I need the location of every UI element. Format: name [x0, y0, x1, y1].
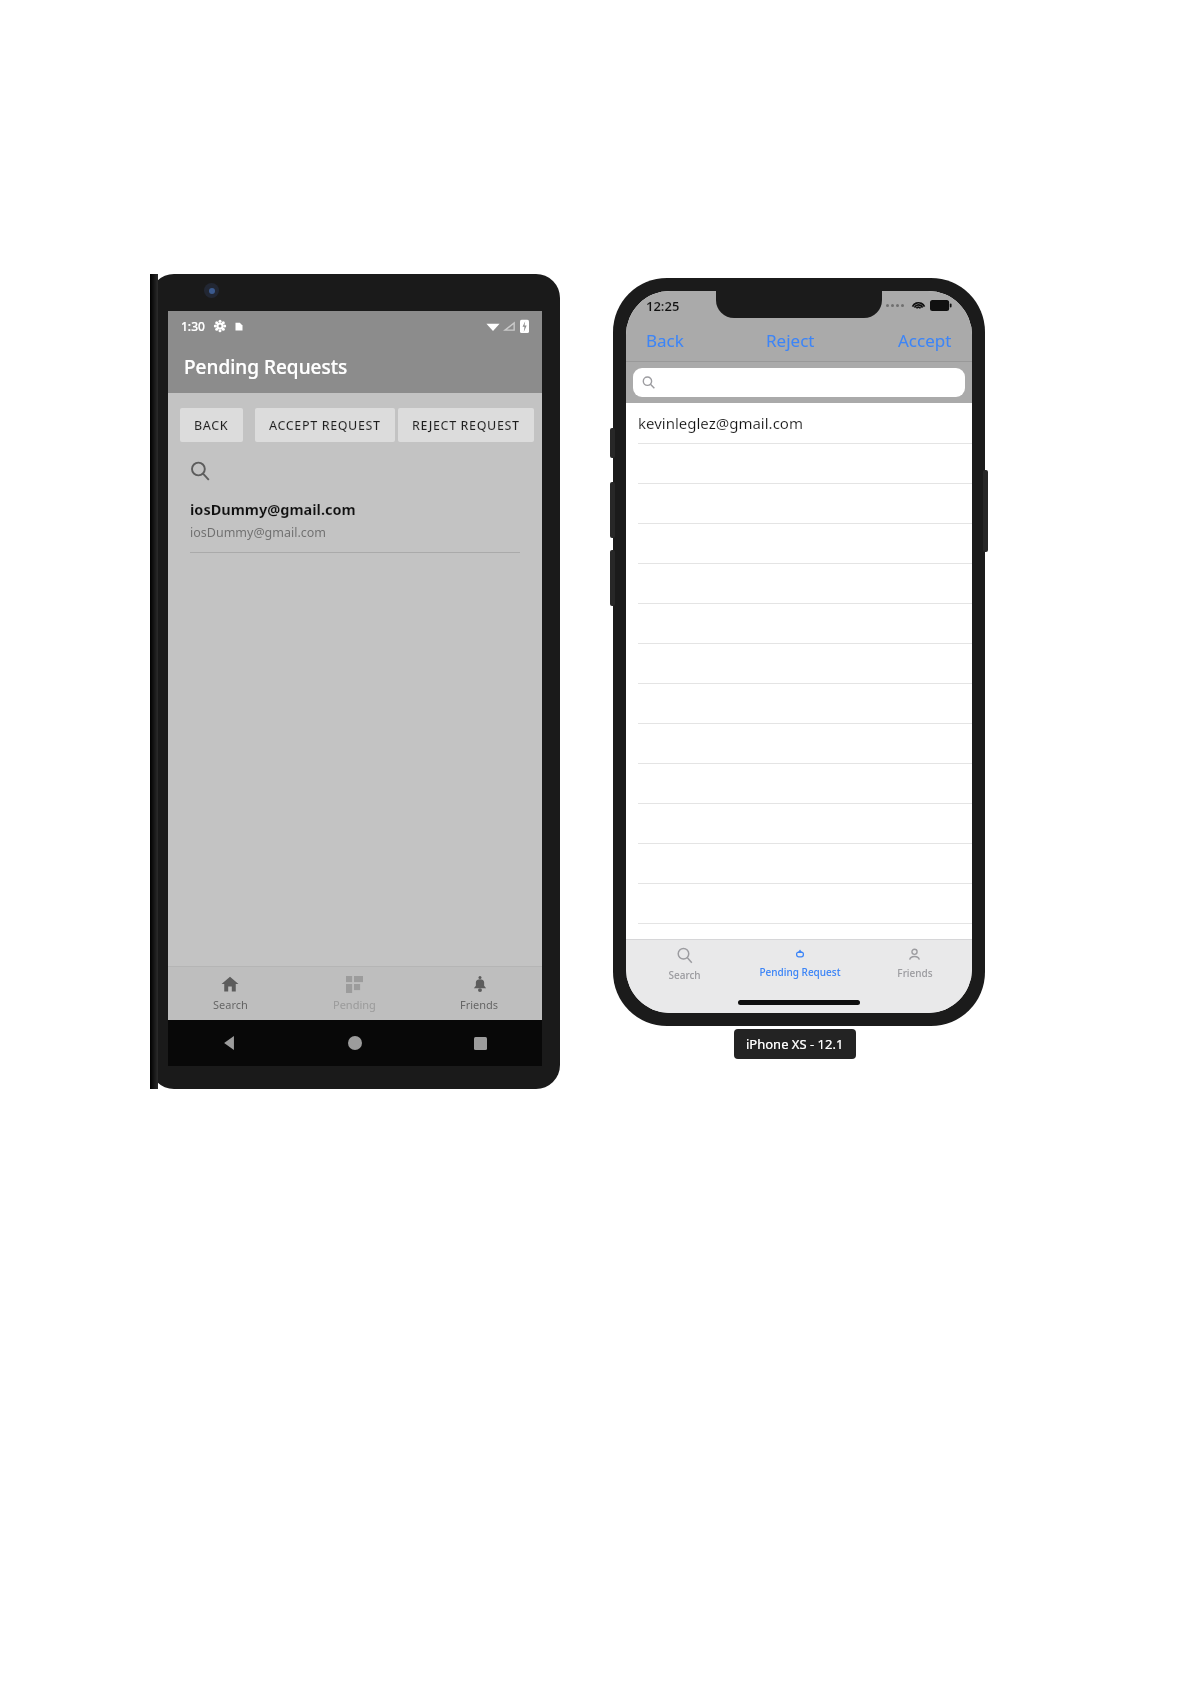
button[interactable]: Search — [168, 967, 292, 1020]
button[interactable]: Home — [339, 1027, 371, 1059]
staticText: Search — [668, 968, 701, 982]
staticText: iosDummy@gmail.com — [190, 499, 356, 519]
button[interactable]: ACCEPT REQUEST — [255, 408, 395, 442]
button[interactable]: Recents — [464, 1027, 496, 1059]
staticText: 12:25 — [646, 297, 680, 315]
button[interactable]: REJECT REQUEST — [398, 408, 534, 442]
staticText: Friends — [460, 997, 499, 1012]
button[interactable]: iosDummy@gmail.com — [168, 487, 542, 552]
button[interactable]: Back — [214, 1027, 246, 1059]
button[interactable]: Friends — [857, 940, 972, 991]
button[interactable]: Back — [638, 324, 692, 357]
button[interactable]: Search — [626, 940, 742, 991]
staticText: ACCEPT REQUEST — [269, 417, 381, 434]
staticText: iosDummy@gmail.com — [190, 524, 327, 541]
staticText: REJECT REQUEST — [412, 417, 520, 434]
staticText: BACK — [194, 417, 229, 434]
staticText: Reject — [766, 329, 815, 352]
button[interactable]: BACK — [180, 408, 243, 442]
staticText: kevinleglez@gmail.com — [638, 413, 803, 433]
staticText: Pending Requests — [184, 354, 348, 380]
button[interactable]: Search field — [633, 368, 965, 397]
staticText: Pending Request — [759, 965, 841, 979]
button[interactable]: kevinleglez@gmail.com — [626, 403, 972, 443]
staticText: Pending — [333, 997, 376, 1012]
button[interactable]: Pending — [292, 967, 417, 1020]
button[interactable]: Search — [184, 455, 216, 487]
button[interactable]: Accept — [890, 324, 960, 357]
staticText: Back — [646, 329, 684, 352]
staticText: Accept — [898, 329, 952, 352]
staticText: Search — [213, 997, 248, 1012]
staticText: 1:30 — [181, 318, 205, 334]
button[interactable]: Pending Request — [742, 940, 857, 991]
button[interactable]: Reject — [758, 324, 823, 357]
staticText: Friends — [897, 966, 933, 980]
button[interactable]: iPhone XS - 12.1 — [734, 1029, 856, 1059]
button[interactable]: Friends — [417, 967, 542, 1020]
staticText: iPhone XS - 12.1 — [746, 1035, 844, 1053]
